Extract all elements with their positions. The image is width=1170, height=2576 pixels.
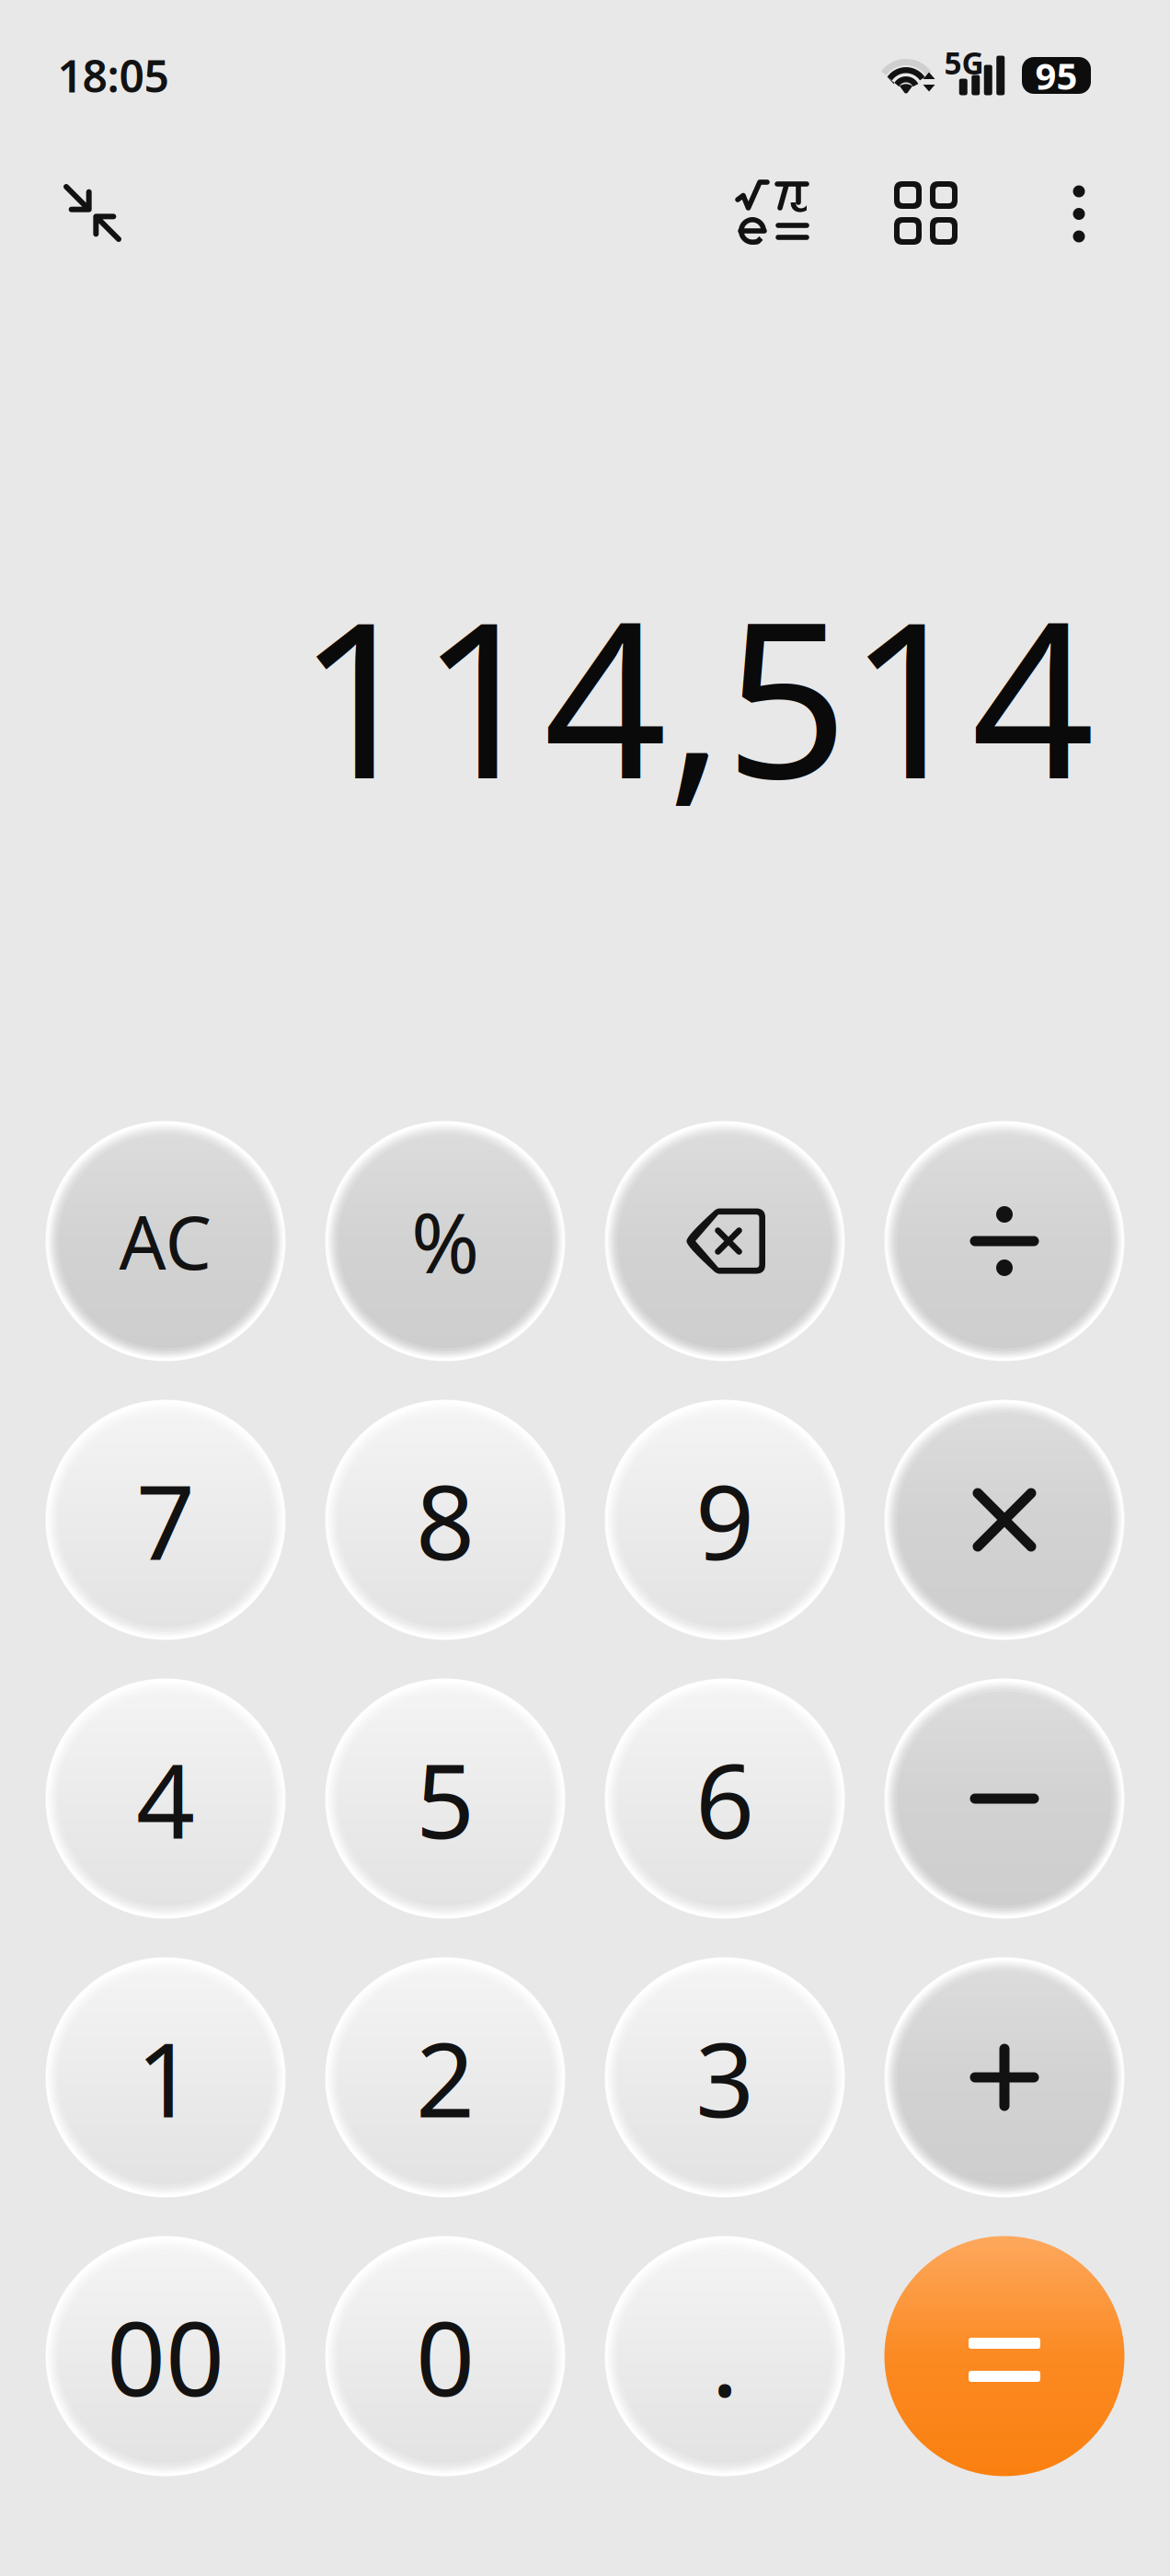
button[interactable]: Decimal point (605, 2236, 845, 2476)
staticText: . (711, 2288, 739, 2424)
staticText: 5 (416, 1730, 475, 1867)
button[interactable]: Equals (884, 2236, 1124, 2476)
staticText: 95 (1035, 51, 1078, 100)
button[interactable]: Delete (605, 1121, 845, 1361)
button[interactable]: Converter (861, 149, 990, 277)
staticText: 9 (695, 1451, 754, 1588)
button[interactable]: More options (1024, 149, 1134, 278)
staticText: AC (119, 1192, 212, 1290)
button[interactable]: 3 (605, 1957, 845, 2197)
staticText: 4 (136, 1730, 195, 1867)
button[interactable]: 2 (325, 1957, 565, 2197)
button[interactable]: Multiply (884, 1400, 1124, 1640)
staticText: 6 (695, 1730, 754, 1867)
button[interactable]: Percent (325, 1121, 565, 1361)
staticText: 3 (695, 2009, 754, 2146)
staticText: % (411, 1187, 479, 1296)
button[interactable]: 5 (325, 1679, 565, 1919)
button[interactable]: All clear (46, 1121, 286, 1361)
staticText: 18:05 (57, 46, 169, 105)
staticText: 7 (136, 1451, 195, 1588)
staticText: 2 (416, 2009, 475, 2146)
button[interactable]: Subtract (884, 1679, 1124, 1919)
button[interactable]: Divide (884, 1121, 1124, 1361)
button[interactable]: Collapse (28, 149, 157, 277)
staticText: 5G (944, 42, 984, 83)
staticText: 8 (416, 1451, 475, 1588)
button[interactable]: 4 (46, 1679, 286, 1919)
button[interactable]: 00 (46, 2236, 286, 2476)
button[interactable]: 7 (46, 1400, 286, 1640)
button[interactable]: 1 (46, 1957, 286, 2197)
staticText: 114,514 (297, 551, 1095, 838)
button[interactable]: Add (884, 1957, 1124, 2197)
staticText: 00 (107, 2288, 224, 2424)
button[interactable]: 6 (605, 1679, 845, 1919)
button[interactable]: 9 (605, 1400, 845, 1640)
staticText: 1 (136, 2009, 195, 2146)
button[interactable]: 0 (325, 2236, 565, 2476)
button[interactable]: 8 (325, 1400, 565, 1640)
button[interactable]: Scientific mode (704, 148, 842, 277)
staticText: 0 (416, 2288, 475, 2424)
